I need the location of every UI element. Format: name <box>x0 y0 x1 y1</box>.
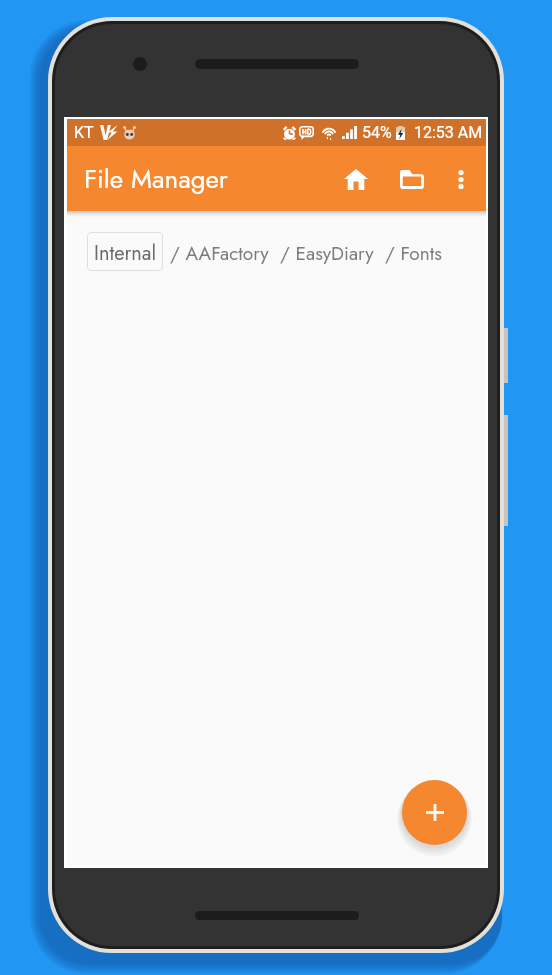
button[interactable]: Add <box>402 780 467 845</box>
staticText: Internal <box>94 239 157 268</box>
button[interactable]: More options <box>442 160 480 198</box>
staticText: File Manager <box>84 160 228 198</box>
staticText: 54% <box>362 123 392 142</box>
button[interactable]: Home <box>335 158 377 200</box>
staticText: 12:53 AM <box>414 123 483 142</box>
button[interactable]: Internal <box>87 232 163 271</box>
button[interactable]: Folder <box>391 158 433 200</box>
staticText: KT <box>74 123 94 142</box>
staticText: / AAFactory / EasyDiary / Fonts <box>170 240 442 267</box>
